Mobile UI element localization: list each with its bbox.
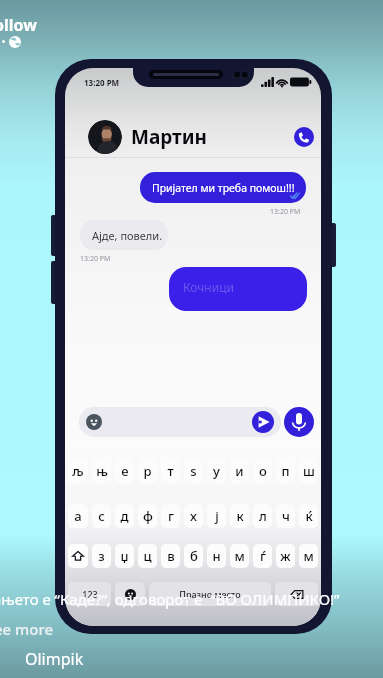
staticText: л	[259, 507, 267, 525]
button[interactable]: Call	[294, 127, 314, 147]
button[interactable]: Пријател ми треба помош!!!	[140, 172, 306, 203]
staticText: ч	[282, 507, 290, 525]
staticText: в	[167, 547, 175, 565]
button[interactable]: ш	[299, 459, 318, 483]
button[interactable]: Кочници	[169, 267, 307, 311]
button[interactable]: г	[161, 504, 180, 528]
button[interactable]: Празно место	[149, 582, 271, 606]
button[interactable]: Backspace	[275, 582, 318, 606]
button[interactable]: ј	[207, 504, 226, 528]
button[interactable]: л	[253, 504, 272, 528]
button[interactable]: с	[92, 504, 111, 528]
staticText: ee more	[0, 619, 54, 639]
button[interactable]: Ајде, повели.	[80, 220, 168, 250]
staticText: и	[235, 462, 244, 480]
button[interactable]: љ	[68, 459, 88, 483]
staticText: з	[98, 547, 105, 565]
staticText: ѓ	[260, 547, 266, 565]
staticText: ањето е “Каде?”, одговорот е “ВО ОЛИМПИК…	[0, 589, 376, 609]
staticText: Пријател ми треба помош!!!	[152, 181, 295, 195]
button[interactable]: ќ	[299, 504, 318, 528]
button[interactable]: е	[115, 459, 134, 483]
button[interactable]: д	[115, 504, 134, 528]
staticText: ц	[143, 547, 152, 565]
staticText: н	[212, 547, 221, 565]
button[interactable]	[79, 407, 281, 437]
staticText: г	[168, 507, 174, 525]
button[interactable]: м	[230, 544, 249, 568]
button[interactable]: Shift	[68, 544, 88, 568]
staticText: е	[121, 462, 129, 480]
staticText: 123	[82, 588, 98, 600]
staticText: п	[281, 462, 290, 480]
button[interactable]: 123	[68, 582, 111, 606]
button[interactable]: Send	[252, 411, 274, 433]
staticText: м	[303, 547, 314, 565]
button[interactable]: т	[161, 459, 180, 483]
staticText: Olimpik	[25, 648, 84, 670]
button[interactable]: а	[68, 504, 88, 528]
staticText: б	[190, 547, 198, 565]
button[interactable]: и	[230, 459, 249, 483]
button[interactable]: џ	[115, 544, 134, 568]
button[interactable]: б	[184, 544, 203, 568]
staticText: љ	[72, 462, 84, 480]
staticText: џ	[120, 547, 129, 565]
staticText: Ајде, повели.	[92, 228, 163, 243]
staticText: м	[234, 547, 245, 565]
staticText: т	[167, 462, 174, 480]
button[interactable]: х	[184, 504, 203, 528]
button[interactable]: њ	[92, 459, 111, 483]
staticText: к	[236, 507, 244, 525]
staticText: s	[190, 462, 197, 480]
button[interactable]: s	[184, 459, 203, 483]
button[interactable]: к	[230, 504, 249, 528]
button[interactable]: Voice message	[284, 407, 314, 437]
staticText: 13:20 PM	[84, 77, 120, 88]
staticText: р	[143, 462, 152, 480]
staticText: 13:20 PM	[270, 207, 301, 217]
staticText: х	[190, 507, 197, 525]
button[interactable]: з	[92, 544, 111, 568]
button[interactable]: ч	[276, 504, 295, 528]
button[interactable]: м	[299, 544, 318, 568]
staticText: д	[120, 507, 129, 525]
staticText: Празно место	[179, 588, 241, 600]
button[interactable]: о	[253, 459, 272, 483]
staticText: Кочници	[183, 279, 234, 295]
button[interactable]: Мартин	[65, 99, 321, 158]
staticText: с	[98, 507, 105, 525]
button[interactable]: в	[161, 544, 180, 568]
button[interactable]: р	[138, 459, 157, 483]
button[interactable]: у	[207, 459, 226, 483]
button[interactable]: п	[276, 459, 295, 483]
button[interactable]: ѓ	[253, 544, 272, 568]
staticText: ќ	[305, 507, 313, 525]
button[interactable]: ц	[138, 544, 157, 568]
staticText: 13:20 PM	[80, 254, 111, 264]
staticText: ш	[303, 462, 315, 480]
staticText: ollow	[0, 14, 37, 36]
staticText: ј	[215, 507, 219, 525]
staticText: ф	[143, 507, 153, 525]
staticText: њ	[96, 462, 108, 480]
button[interactable]: Emoji	[115, 582, 145, 606]
staticText: о	[259, 462, 267, 480]
button[interactable]: н	[207, 544, 226, 568]
staticText: ж	[280, 547, 291, 565]
staticText: а	[74, 507, 82, 525]
button[interactable]: ф	[138, 504, 157, 528]
button[interactable]: ж	[276, 544, 295, 568]
staticText: у	[213, 462, 220, 480]
staticText: Мартин	[131, 124, 207, 150]
